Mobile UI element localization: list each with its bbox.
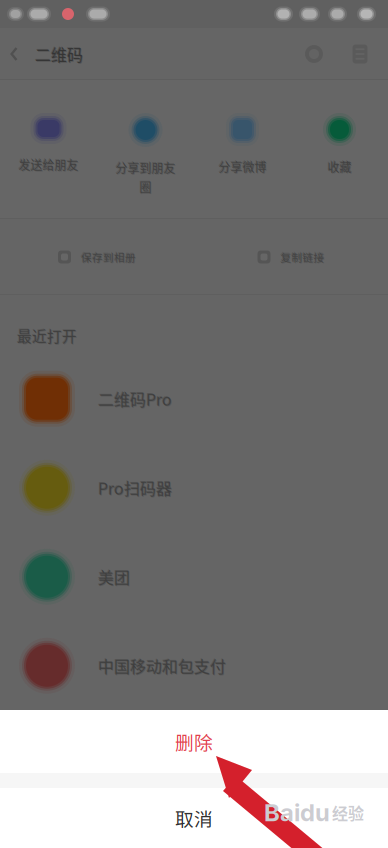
staticText: 保存到相册 xyxy=(80,248,135,264)
staticText: 中国移动和包支付 xyxy=(98,654,226,677)
staticText: 发送给朋友 xyxy=(19,157,79,174)
staticText: 复制链接 xyxy=(280,248,324,264)
button[interactable]: 二维码Pro xyxy=(0,354,388,443)
staticText: 收藏 xyxy=(327,158,351,175)
button[interactable]: 分享微博 xyxy=(194,80,291,219)
staticText: 圈 xyxy=(140,179,152,197)
staticText: Pro扫码器 xyxy=(98,476,172,499)
staticText: 发送给朋友 xyxy=(18,155,78,173)
staticText: 经验 xyxy=(332,801,364,824)
button[interactable]: Pro扫码器 xyxy=(0,443,388,532)
staticText: Pro扫码器 xyxy=(97,475,171,499)
staticText: 保存到相册 xyxy=(81,249,136,265)
staticText: 二维码 xyxy=(36,43,84,66)
button[interactable]: 复制链接 xyxy=(194,219,388,295)
staticText: 圈 xyxy=(139,178,151,195)
staticText: 收藏 xyxy=(328,159,352,176)
button[interactable]: 中国移动和包支付 xyxy=(0,621,388,710)
button[interactable]: 返回 xyxy=(0,28,83,80)
staticText: 圈 xyxy=(139,178,151,196)
button[interactable]: 美团 xyxy=(0,532,388,621)
staticText: 二维码Pro xyxy=(97,386,171,410)
staticText: 取消 xyxy=(175,804,213,831)
staticText: 美团 xyxy=(97,564,129,588)
staticText: 最近打开 xyxy=(17,325,77,346)
staticText: Baidu xyxy=(264,798,330,827)
button[interactable]: 保存到相册 xyxy=(0,219,194,295)
button[interactable]: 取消 xyxy=(0,788,388,848)
button[interactable]: 更多 xyxy=(337,28,383,80)
staticText: 分享到朋友 xyxy=(115,159,175,176)
staticText: 保存到相册 xyxy=(82,250,137,265)
staticText: 二维码Pro xyxy=(99,388,173,411)
staticText: 复制链接 xyxy=(280,249,324,265)
staticText: 二维码Pro xyxy=(98,387,172,410)
staticText: 中国移动和包支付 xyxy=(97,653,225,677)
staticText: Pro扫码器 xyxy=(99,477,173,500)
staticText: 删除 xyxy=(175,728,213,755)
staticText: 分享到朋友 xyxy=(115,158,175,176)
staticText: 分享微博 xyxy=(219,159,267,176)
staticText: 复制链接 xyxy=(281,250,325,265)
staticText: 二维码 xyxy=(34,42,82,65)
button[interactable]: 收藏 xyxy=(291,80,388,219)
staticText: 分享到朋友 xyxy=(116,160,176,177)
staticText: 美团 xyxy=(98,565,130,588)
button[interactable]: 分享到朋友 xyxy=(97,80,194,219)
staticText: 美团 xyxy=(99,566,131,589)
staticText: 分享微博 xyxy=(218,158,266,175)
staticText: 发送给朋友 xyxy=(18,156,78,173)
staticText: 最近打开 xyxy=(16,324,76,345)
staticText: 分享微博 xyxy=(218,157,266,175)
staticText: 二维码 xyxy=(35,42,83,66)
staticText: 中国移动和包支付 xyxy=(99,655,227,678)
button[interactable]: 发送给朋友 xyxy=(0,80,97,219)
staticText: 最近打开 xyxy=(18,326,78,347)
button[interactable]: 删除 xyxy=(0,710,388,773)
staticText: 收藏 xyxy=(327,157,351,175)
